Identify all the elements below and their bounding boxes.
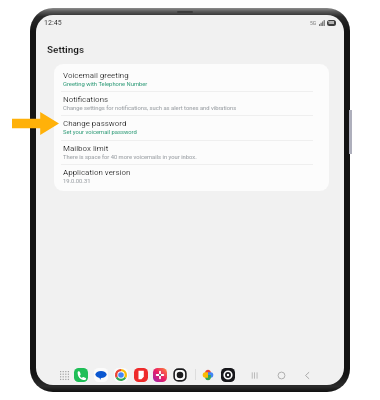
staticText: 12:45 bbox=[44, 19, 62, 27]
button[interactable]: Messages bbox=[92, 366, 110, 384]
staticText: There is space for 40 more voicemails in… bbox=[63, 154, 197, 161]
staticText: Greeting with Telephone Number bbox=[63, 81, 148, 88]
button[interactable]: Phone bbox=[72, 366, 90, 384]
button[interactable]: Chrome bbox=[112, 366, 130, 384]
button[interactable]: Gallery bbox=[151, 366, 169, 384]
button[interactable]: Home bbox=[272, 366, 290, 384]
button[interactable]: Keep notes bbox=[132, 366, 150, 384]
button[interactable]: Voicemail greeting bbox=[54, 67, 329, 91]
button[interactable]: Camera bbox=[171, 366, 189, 384]
staticText: Set your voicemail password bbox=[63, 129, 137, 136]
staticText: Notifications bbox=[63, 95, 109, 104]
button[interactable]: Mailbox limit bbox=[54, 140, 329, 164]
staticText: Application version bbox=[63, 168, 131, 177]
button[interactable]: Recent apps bbox=[245, 366, 263, 384]
staticText: 5G bbox=[310, 20, 317, 26]
button[interactable]: Notifications bbox=[54, 91, 329, 115]
staticText: Change settings for notifications, such … bbox=[63, 105, 237, 112]
button[interactable]: Back bbox=[298, 366, 316, 384]
staticText: 19.0.00.31 bbox=[63, 178, 91, 185]
button[interactable]: Application version bbox=[54, 164, 329, 188]
button[interactable]: Photos bbox=[199, 366, 217, 384]
button[interactable]: Settings bbox=[219, 366, 237, 384]
button[interactable]: Change password bbox=[54, 115, 329, 139]
staticText: Change password bbox=[63, 119, 127, 128]
button[interactable]: All apps bbox=[55, 366, 73, 384]
staticText: Voicemail greeting bbox=[63, 71, 129, 80]
staticText: Settings bbox=[47, 44, 85, 56]
staticText: 100 bbox=[328, 21, 335, 25]
staticText: Mailbox limit bbox=[63, 144, 109, 153]
